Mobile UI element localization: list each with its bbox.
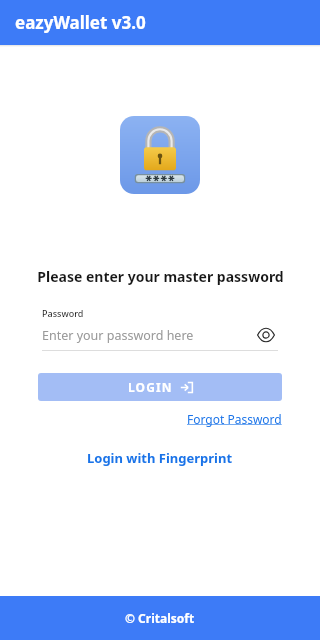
button[interactable]: Login with Fingerprint <box>87 449 233 467</box>
button[interactable]: LOGIN <box>38 373 282 401</box>
staticText: Password <box>42 307 84 319</box>
staticText: LOGIN <box>128 379 173 395</box>
button[interactable]: Password <box>42 307 278 351</box>
staticText: Forgot Password <box>187 411 282 427</box>
staticText: © Critalsoft <box>125 610 195 626</box>
staticText: Enter your password here <box>42 327 254 344</box>
staticText: Login with Fingerprint <box>87 449 233 467</box>
button[interactable]: Forgot Password <box>187 411 282 427</box>
staticText: Please enter your master password <box>37 267 284 286</box>
button[interactable]: Show password <box>254 323 278 347</box>
staticText: eazyWallet v3.0 <box>15 11 146 34</box>
